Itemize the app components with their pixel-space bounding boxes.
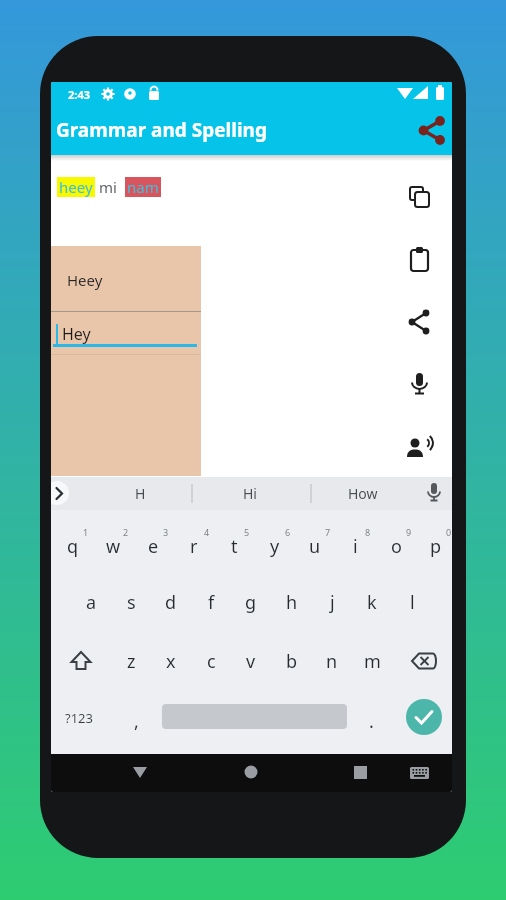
staticText: m [364,649,381,674]
button[interactable] [122,754,158,792]
button[interactable]: , [114,708,158,734]
staticText: r [190,534,198,559]
staticText: , [134,709,139,734]
button[interactable]: d [154,587,188,617]
staticText: s [127,590,136,615]
staticText: 8 [365,526,371,538]
button[interactable]: H [118,480,162,506]
button[interactable]: o [379,531,413,561]
staticText: k [367,590,377,615]
button[interactable]: k [355,587,389,617]
staticText: h [286,590,298,615]
staticText: a [86,590,97,615]
staticText: Grammar and Spelling [56,117,267,143]
staticText: v [246,649,256,674]
button[interactable]: f [194,587,228,617]
staticText: 0 [446,526,452,538]
staticText: mi [99,177,117,197]
button[interactable] [342,754,378,792]
button[interactable]: c [194,646,228,676]
staticText: 1 [83,526,89,538]
button[interactable]: u [298,531,332,561]
staticText: Hey [62,323,91,345]
button[interactable]: Hi [228,480,272,506]
staticText: Heey [67,270,103,290]
staticText: l [410,590,415,615]
staticText: 2:43 [68,87,90,102]
button[interactable]: n [315,646,349,676]
staticText: ?123 [65,709,93,727]
button[interactable] [401,180,437,216]
button[interactable]: v [234,646,268,676]
staticText: w [106,534,121,559]
button[interactable]: h [275,587,309,617]
staticText: Hi [243,484,257,503]
button[interactable]: a [74,587,108,617]
button[interactable]: z [114,646,148,676]
button[interactable]: g [234,587,268,617]
staticText: H [135,484,146,503]
button[interactable]: nam [127,177,159,197]
staticText: 2 [123,526,129,538]
button[interactable] [401,430,437,466]
button[interactable]: ?123 [54,705,104,731]
button[interactable] [411,109,452,151]
button[interactable] [401,304,437,340]
staticText: e [148,534,159,559]
staticText: y [270,534,280,559]
staticText: g [245,590,257,615]
button[interactable]: m [355,646,389,676]
staticText: i [353,534,358,559]
button[interactable] [401,241,437,277]
button[interactable]: q [56,531,90,561]
staticText: n [326,649,338,674]
staticText: j [330,590,335,615]
button[interactable]: How [335,480,391,506]
staticText: c [207,649,216,674]
staticText: o [391,534,402,559]
staticText: 3 [163,526,169,538]
staticText: 9 [406,526,412,538]
button[interactable] [233,754,269,792]
button[interactable] [51,246,201,311]
button[interactable] [401,366,437,402]
button[interactable]: b [275,646,309,676]
staticText: t [231,534,238,559]
staticText: x [166,649,176,674]
button[interactable] [63,643,99,679]
button[interactable]: l [395,587,429,617]
button[interactable]: p [419,531,452,561]
staticText: b [286,649,298,674]
button[interactable]: e [136,531,170,561]
staticText: q [67,534,79,559]
button[interactable]: . [349,708,393,734]
staticText: heey [59,177,93,197]
staticText: u [309,534,321,559]
staticText: d [165,590,177,615]
button[interactable]: x [154,646,188,676]
staticText: How [348,484,378,503]
staticText: . [369,709,374,734]
button[interactable]: s [114,587,148,617]
staticText: f [208,590,215,615]
staticText: p [430,534,442,559]
button[interactable]: j [315,587,349,617]
button[interactable]: i [338,531,372,561]
staticText: 6 [285,526,291,538]
button[interactable]: r [177,531,211,561]
staticText: nam [127,177,159,197]
staticText: 4 [204,526,210,538]
staticText: 5 [244,526,250,538]
button[interactable]: y [258,531,292,561]
staticText: 7 [325,526,331,538]
button[interactable]: heey [59,177,93,197]
staticText: z [127,649,136,674]
button[interactable] [406,699,442,735]
button[interactable] [406,643,442,679]
button[interactable] [401,754,437,792]
button[interactable]: w [96,531,130,561]
button[interactable]: t [217,531,251,561]
